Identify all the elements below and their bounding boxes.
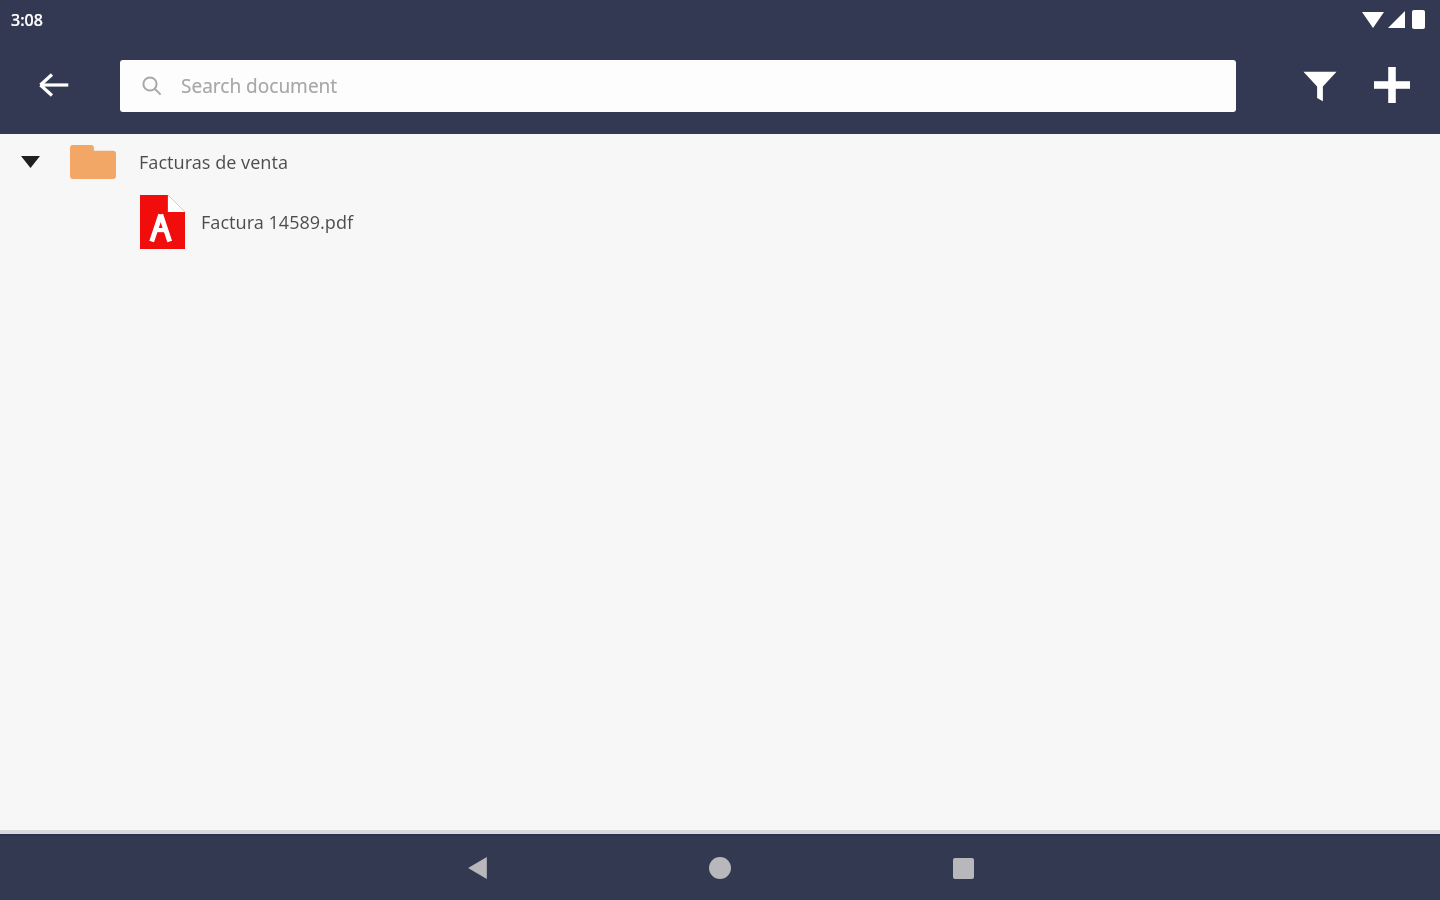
staticText: Facturas de venta — [139, 150, 289, 175]
button[interactable]: Back — [22, 53, 86, 117]
button[interactable]: Home — [688, 836, 752, 900]
staticText: Factura 14589.pdf — [201, 210, 354, 235]
button[interactable]: Facturas de venta — [0, 134, 1440, 190]
button[interactable]: Filter — [1288, 53, 1352, 117]
button[interactable]: Add — [1360, 53, 1424, 117]
staticText: 3:08 — [11, 9, 43, 31]
button[interactable]: Recent apps — [931, 836, 995, 900]
button[interactable]: Back — [446, 836, 510, 900]
button[interactable]: Search document — [120, 60, 1236, 112]
staticText: Search document — [181, 73, 338, 99]
button[interactable]: Factura 14589.pdf — [0, 191, 1440, 253]
